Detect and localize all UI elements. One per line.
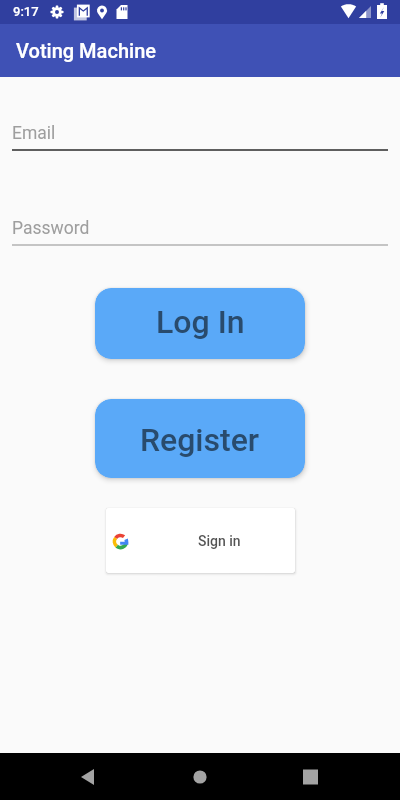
staticText: Register bbox=[140, 421, 260, 459]
staticText: Password bbox=[12, 218, 90, 239]
button[interactable]: Home bbox=[172, 753, 227, 800]
staticText: Email bbox=[12, 123, 56, 144]
staticText: Sign in bbox=[198, 533, 241, 549]
button[interactable]: Back bbox=[60, 753, 115, 800]
staticText: Log In bbox=[156, 303, 245, 341]
button[interactable]: Register bbox=[95, 399, 305, 478]
staticText: Voting Machine bbox=[16, 39, 156, 62]
button[interactable]: Log In bbox=[95, 288, 305, 359]
button[interactable]: Recent apps bbox=[283, 753, 338, 800]
staticText: 9:17 bbox=[13, 4, 39, 19]
button[interactable]: Sign in bbox=[106, 508, 295, 573]
